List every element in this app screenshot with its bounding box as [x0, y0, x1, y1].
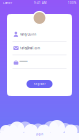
staticText: harley@mail.com	[19, 46, 39, 50]
staticText: 100%	[68, 1, 76, 5]
staticText: Login	[35, 132, 43, 136]
staticText: Carrier	[3, 1, 12, 5]
staticText: ••••••••	[19, 60, 27, 63]
button[interactable]: Login	[35, 132, 43, 136]
staticText: Register	[33, 82, 45, 86]
button[interactable]: Register	[26, 80, 52, 88]
staticText: Harley Quinn	[19, 33, 36, 36]
staticText: 9:41 AM	[34, 1, 46, 5]
